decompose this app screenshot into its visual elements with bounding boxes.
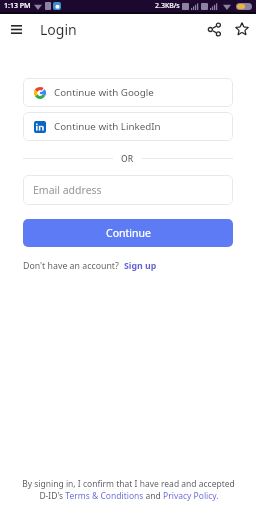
staticText: Sign up: [124, 260, 157, 272]
staticText: Login: [40, 20, 77, 39]
button[interactable]: Continue: [23, 219, 233, 247]
button[interactable]: Continue with Google: [23, 78, 233, 107]
button[interactable]: Continue with LinkedIn: [23, 112, 233, 141]
staticText: D-ID's Terms & Conditions and Privacy Po…: [39, 490, 219, 502]
staticText: Don't have an account?: [23, 260, 119, 272]
button[interactable]: Favorite: [231, 18, 253, 40]
staticText: 1:13 PM: [4, 1, 31, 11]
button[interactable]: Menu: [5, 18, 27, 40]
staticText: Continue with LinkedIn: [54, 120, 161, 133]
staticText: 2.3KB/s: [155, 1, 180, 11]
staticText: Email address: [33, 183, 102, 197]
staticText: By signing in, I confirm that I have rea…: [22, 478, 235, 490]
staticText: Continue with Google: [54, 86, 154, 99]
staticText: Continue: [106, 226, 151, 240]
button[interactable]: Share: [203, 18, 225, 40]
staticText: OR: [121, 153, 134, 164]
button[interactable]: Sign up: [124, 260, 157, 272]
button[interactable]: Email address: [23, 175, 233, 205]
